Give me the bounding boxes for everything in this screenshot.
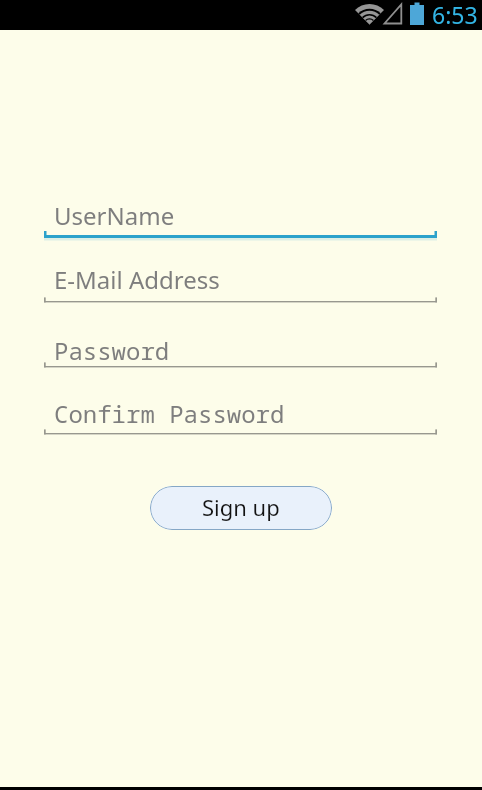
staticText: Confirm Password <box>54 397 285 430</box>
staticText: Sign up <box>202 492 280 522</box>
button[interactable]: UserName <box>44 191 437 241</box>
button[interactable]: Confirm Password <box>44 389 437 439</box>
staticText: E-Mail Address <box>54 263 220 296</box>
staticText: Password <box>54 334 170 367</box>
button[interactable]: Sign up <box>150 486 332 530</box>
button[interactable]: E-Mail Address <box>44 257 437 307</box>
staticText: 6:53 <box>432 0 478 29</box>
staticText: UserName <box>54 199 175 232</box>
button[interactable]: Password <box>44 322 437 372</box>
